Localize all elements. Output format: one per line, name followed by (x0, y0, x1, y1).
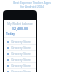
staticText: Grocery Store (11, 40, 31, 44)
staticText: for Android 2024 (20, 5, 44, 9)
button[interactable]: Category (4, 57, 36, 62)
staticText: Grocery Store (11, 52, 31, 56)
button[interactable]: Category (4, 51, 36, 56)
button[interactable]: $2,480.00 (12, 26, 28, 31)
button[interactable]: Category (4, 69, 36, 72)
staticText: Grocery Store (11, 58, 31, 62)
staticText: Grocery Store (11, 64, 31, 68)
button[interactable]: Category (4, 45, 36, 50)
staticText: My Wallet balance (7, 22, 33, 26)
staticText: $2,480.00 (12, 26, 28, 31)
button[interactable]: Category (4, 63, 36, 68)
button[interactable]: Category (4, 39, 36, 44)
staticText: Grocery Store (11, 46, 31, 50)
staticText: Grocery Store (11, 70, 31, 72)
staticText: Today (6, 32, 15, 36)
staticText: Best Expense Tracker Apps (13, 1, 51, 5)
